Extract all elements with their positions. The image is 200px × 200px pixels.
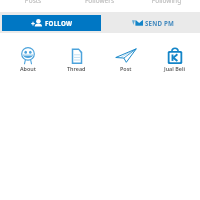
staticText: Posts xyxy=(0,0,66,5)
staticText: FOLLOW xyxy=(45,19,73,27)
staticText: Jual Beli xyxy=(164,65,185,72)
staticText: Post xyxy=(120,65,132,72)
button[interactable]: Followers xyxy=(66,0,133,12)
button[interactable]: Posts xyxy=(0,0,66,12)
button[interactable]: Jual Beli xyxy=(150,47,199,72)
button[interactable]: SEND PM xyxy=(101,15,200,31)
staticText: Thread xyxy=(67,65,86,72)
staticText: Following xyxy=(133,0,200,5)
button[interactable]: Following xyxy=(133,0,200,12)
staticText: Followers xyxy=(66,0,133,5)
button[interactable]: Thread xyxy=(52,47,101,72)
button[interactable]: Post xyxy=(101,47,150,72)
button[interactable]: FOLLOW xyxy=(2,15,101,31)
button[interactable]: About xyxy=(3,47,52,72)
staticText: About xyxy=(20,65,36,72)
staticText: SEND PM xyxy=(145,19,175,27)
